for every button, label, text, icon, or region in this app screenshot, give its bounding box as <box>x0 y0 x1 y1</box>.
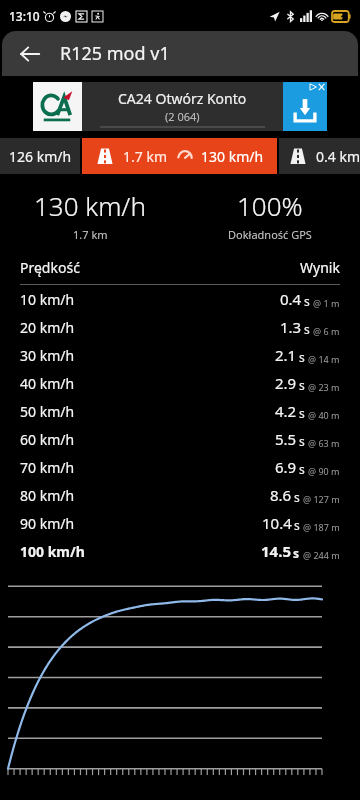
staticText: 30 km/h <box>20 346 75 365</box>
button[interactable]: 40 km/h <box>0 369 360 397</box>
staticText: s <box>299 349 305 365</box>
staticText: s <box>293 545 300 561</box>
button[interactable]: 70 km/h <box>0 453 360 481</box>
staticText: 1.7 km <box>123 147 167 166</box>
button[interactable]: 0.4 km <box>279 138 360 174</box>
staticText: 1.7 km <box>73 227 108 242</box>
staticText: s <box>299 405 305 421</box>
staticText: (2 064) <box>165 109 200 124</box>
staticText: 4.2 <box>275 401 297 421</box>
button[interactable]: 50 km/h <box>0 397 360 425</box>
staticText: Dokładność GPS <box>228 227 312 242</box>
staticText: 14.5 <box>261 541 291 561</box>
button[interactable]: 90 km/h <box>0 509 360 537</box>
staticText: s <box>294 517 300 533</box>
staticText: Prędkość <box>20 258 80 277</box>
staticText: @ 187 m <box>303 521 340 533</box>
staticText: R125 mod v1 <box>60 41 170 66</box>
staticText: CA24 Otwórz Konto <box>118 89 247 108</box>
button[interactable]: 20 km/h <box>0 313 360 341</box>
staticText: 90 km/h <box>20 514 75 533</box>
button[interactable]: 60 km/h <box>0 425 360 453</box>
staticText: 126 km/h <box>9 147 72 166</box>
staticText: @ 23 m <box>308 381 340 393</box>
staticText: Wynik <box>300 258 340 277</box>
staticText: @ 40 m <box>308 409 340 421</box>
button[interactable]: 10 km/h <box>0 285 360 313</box>
staticText: 2.1 <box>275 345 297 365</box>
staticText: s <box>304 293 310 309</box>
staticText: 6.9 <box>275 457 297 477</box>
staticText: @ 14 m <box>308 353 340 365</box>
button[interactable]: 100 km/h <box>0 537 360 565</box>
staticText: 8.6 <box>270 485 292 505</box>
staticText: 100% <box>237 188 303 223</box>
button[interactable]: 80 km/h <box>0 481 360 509</box>
staticText: s <box>294 489 300 505</box>
staticText: 60 km/h <box>20 430 75 449</box>
button[interactable]: 1.7 km <box>82 138 277 174</box>
staticText: 5.5 <box>275 429 297 449</box>
staticText: 70 km/h <box>20 458 75 477</box>
staticText: 50 km/h <box>20 402 75 421</box>
staticText: 130 km/h <box>201 147 264 166</box>
staticText: 0.4 <box>280 289 302 309</box>
staticText: 10 km/h <box>20 290 75 309</box>
staticText: 1.3 <box>280 317 302 337</box>
staticText: 0.4 km <box>316 147 360 166</box>
staticText: s <box>299 461 305 477</box>
staticText: 13:10 <box>9 8 40 24</box>
staticText: 2.9 <box>275 373 297 393</box>
staticText: @ 1 m <box>313 297 340 309</box>
staticText: 100 km/h <box>20 542 85 561</box>
staticText: @ 127 m <box>303 493 340 505</box>
staticText: 10.4 <box>262 513 292 533</box>
staticText: s <box>299 433 305 449</box>
staticText: @ 6 m <box>313 325 340 337</box>
button[interactable]: Back <box>8 32 52 76</box>
staticText: @ 90 m <box>308 465 340 477</box>
button[interactable]: Advertisement CA24 Otwórz Konto <box>33 82 327 131</box>
staticText: s <box>304 321 310 337</box>
staticText: 40 km/h <box>20 374 75 393</box>
staticText: 80 km/h <box>20 486 75 505</box>
staticText: 20 km/h <box>20 318 75 337</box>
button[interactable]: Install <box>283 82 327 131</box>
button[interactable]: 30 km/h <box>0 341 360 369</box>
button[interactable]: 126 km/h <box>0 138 80 174</box>
staticText: @ 244 m <box>303 549 340 561</box>
staticText: @ 63 m <box>308 437 340 449</box>
staticText: s <box>299 377 305 393</box>
staticText: 130 km/h <box>34 188 146 223</box>
